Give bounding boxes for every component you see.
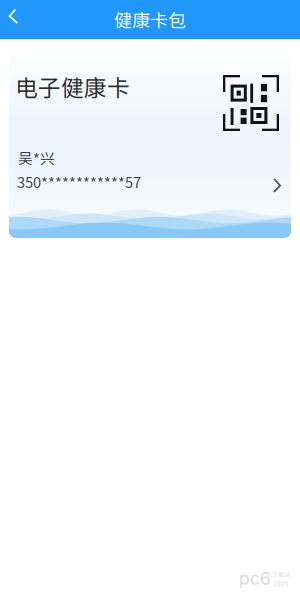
staticText: 下载站 [272,570,290,579]
staticText: 吴*兴 [18,147,55,168]
staticText: 健康卡包 [114,6,186,33]
button[interactable]: Back [0,0,27,39]
staticText: 电子健康卡 [15,70,130,103]
button[interactable]: 电子健康卡 [9,52,291,238]
staticText: pc6 [239,568,271,589]
staticText: 350************57 [17,171,141,192]
staticText: .com [272,579,289,588]
